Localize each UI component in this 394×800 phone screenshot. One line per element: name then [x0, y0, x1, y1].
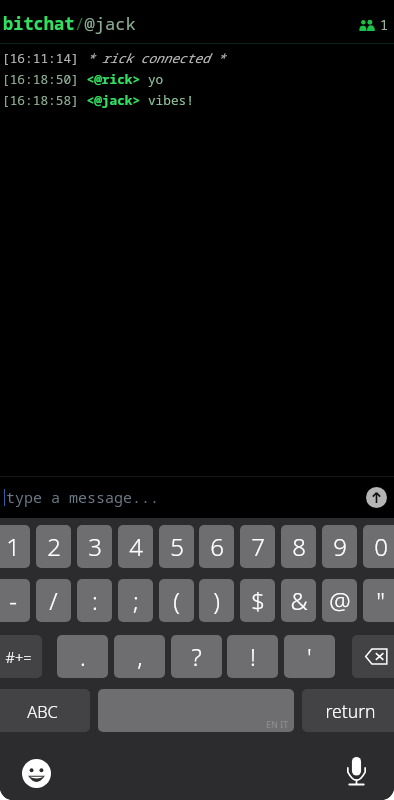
button[interactable]: 2 [36, 525, 71, 568]
staticText: 8 [292, 530, 306, 563]
button[interactable]: 1 [0, 525, 30, 568]
staticText: $ [251, 584, 265, 617]
staticText: ) [213, 584, 220, 617]
button[interactable]: , [114, 635, 165, 678]
button[interactable]: 0 [363, 525, 394, 568]
staticText: 3 [88, 530, 102, 563]
button[interactable]: @ [322, 579, 357, 622]
button[interactable]: - [0, 579, 30, 622]
staticText: EN IT [266, 718, 289, 730]
button[interactable]: return [302, 689, 394, 732]
button[interactable]: ! [227, 635, 278, 678]
button[interactable]: . [57, 635, 108, 678]
staticText: , [137, 640, 143, 673]
staticText: 2 [47, 530, 61, 563]
staticText: 1 [380, 16, 389, 34]
button[interactable]: Dictation [347, 757, 366, 786]
staticText: : [92, 584, 98, 617]
staticText: @ [329, 584, 351, 617]
button[interactable]: 5 [159, 525, 194, 568]
button[interactable]: ; [118, 579, 153, 622]
staticText: ! [250, 640, 256, 673]
button[interactable]: bitchat/@jack [3, 12, 136, 35]
button[interactable]: #+= [0, 635, 42, 678]
button[interactable]: ? [171, 635, 222, 678]
button[interactable]: 8 [281, 525, 316, 568]
other: People in channel [359, 20, 375, 31]
staticText: " [376, 584, 385, 617]
button[interactable]: 4 [118, 525, 153, 568]
button[interactable]: " [363, 579, 394, 622]
button[interactable]: People in channel [357, 14, 391, 36]
button[interactable]: ' [284, 635, 335, 678]
button[interactable]: / [36, 579, 71, 622]
staticText: [16:11:14] * rick connected * [16:18:50]… [2, 49, 225, 108]
staticText: 9 [333, 530, 347, 563]
button[interactable]: : [77, 579, 112, 622]
staticText: 5 [170, 530, 184, 563]
staticText: 1 [6, 530, 20, 563]
staticText: return [325, 699, 376, 723]
staticText: 6 [210, 530, 224, 563]
staticText: type a message... [6, 487, 160, 507]
staticText: ( [173, 584, 180, 617]
staticText: 4 [129, 530, 143, 563]
staticText: ? [191, 640, 202, 673]
button[interactable]: 6 [199, 525, 234, 568]
staticText: 7 [251, 530, 265, 563]
button[interactable]: Emoji keyboard [22, 759, 51, 788]
button[interactable]: & [281, 579, 316, 622]
button[interactable]: ABC [0, 689, 90, 732]
button[interactable]: 9 [322, 525, 357, 568]
button[interactable]: Space [98, 689, 294, 732]
staticText: - [9, 584, 17, 617]
button[interactable]: Backspace [352, 635, 394, 678]
button[interactable]: $ [240, 579, 275, 622]
button[interactable]: Send message [366, 487, 387, 508]
button[interactable]: 7 [240, 525, 275, 568]
staticText: ' [307, 640, 312, 673]
staticText: ; [133, 584, 139, 617]
button[interactable]: ( [159, 579, 194, 622]
staticText: / [49, 584, 58, 617]
button[interactable]: 3 [77, 525, 112, 568]
staticText: & [290, 584, 308, 617]
staticText: #+= [5, 647, 32, 667]
staticText: 0 [374, 530, 388, 563]
button[interactable]: ) [199, 579, 234, 622]
other: Backspace [365, 648, 388, 665]
staticText: ABC [27, 700, 58, 722]
staticText: . [80, 640, 86, 673]
staticText: bitchat/@jack [3, 12, 136, 35]
